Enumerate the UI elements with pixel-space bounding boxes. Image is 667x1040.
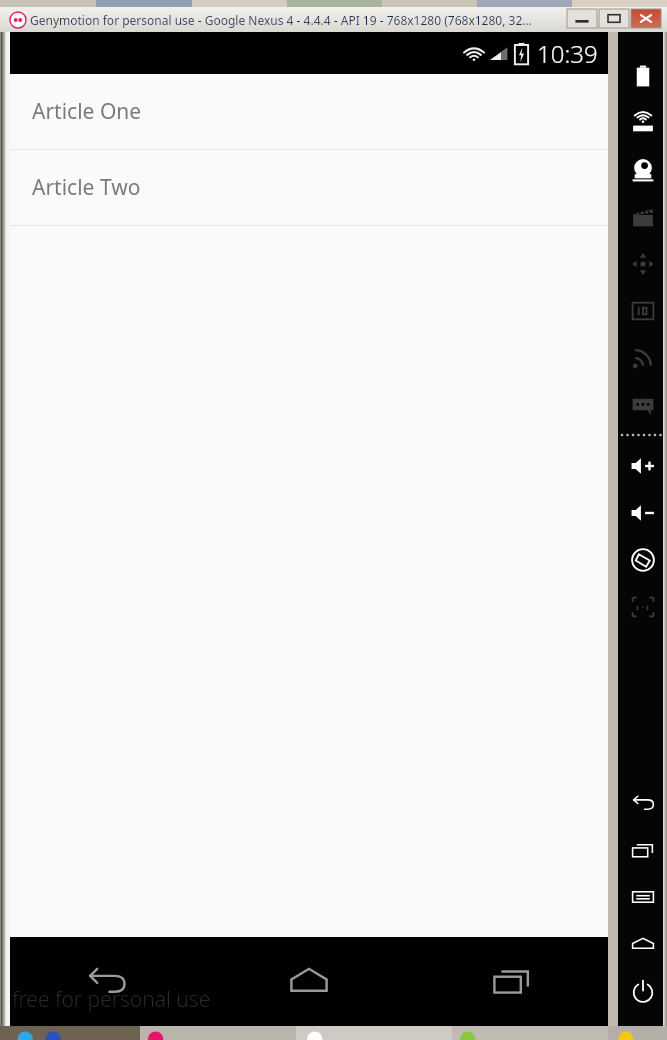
- button[interactable]: Power: [618, 967, 667, 1014]
- button[interactable]: Camera: [618, 146, 667, 193]
- button[interactable]: Home: [618, 920, 667, 967]
- button[interactable]: Window control: [631, 9, 661, 28]
- button[interactable]: Window control: [599, 9, 629, 28]
- button[interactable]: Window control: [567, 9, 597, 28]
- button[interactable]: Volume down: [618, 489, 667, 536]
- button[interactable]: GPS: [618, 99, 667, 146]
- button[interactable]: Menu: [618, 873, 667, 920]
- button[interactable]: Recent apps: [476, 946, 548, 1018]
- staticText: Article Two: [32, 173, 141, 202]
- button[interactable]: Article Two: [10, 150, 608, 225]
- staticText: Article One: [32, 97, 142, 126]
- button[interactable]: Article One: [10, 74, 608, 149]
- button[interactable]: Rotate screen: [618, 536, 667, 583]
- button[interactable]: Volume up: [618, 442, 667, 489]
- button[interactable]: Network: [618, 334, 667, 381]
- staticText: 10:39: [537, 37, 598, 70]
- button[interactable]: Back: [70, 946, 142, 1018]
- button[interactable]: Video recorder: [618, 193, 667, 240]
- button[interactable]: SMS: [618, 381, 667, 428]
- button[interactable]: Back: [618, 779, 667, 826]
- button[interactable]: Recent apps: [618, 826, 667, 873]
- button[interactable]: Identifiers: [618, 287, 667, 334]
- staticText: free for personal use: [12, 985, 211, 1014]
- staticText: Genymotion for personal use - Google Nex…: [30, 12, 532, 28]
- button[interactable]: Accelerometer: [618, 240, 667, 287]
- button[interactable]: Home: [273, 946, 345, 1018]
- button[interactable]: Battery: [618, 52, 667, 99]
- button[interactable]: Actual size: [618, 583, 667, 630]
